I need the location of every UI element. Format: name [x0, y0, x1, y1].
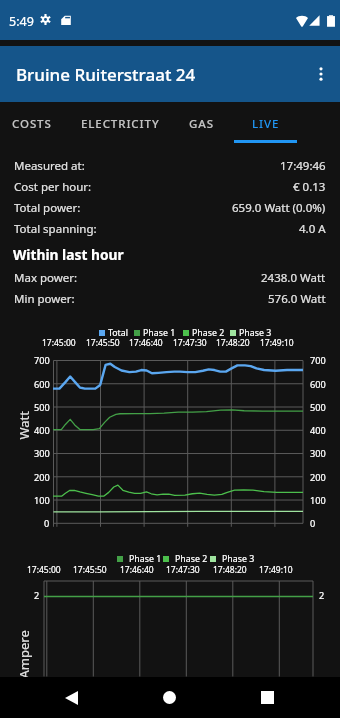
- staticText: 0: [44, 517, 50, 530]
- staticText: Measured at:: [14, 158, 85, 174]
- staticText: Phase 3: [222, 553, 255, 565]
- staticText: 17:48:20: [213, 564, 247, 576]
- button[interactable]: Recent apps: [247, 677, 288, 718]
- staticText: 17:46:40: [120, 564, 154, 576]
- staticText: Total spanning:: [14, 221, 97, 237]
- staticText: Phase 2: [192, 327, 225, 339]
- staticText: Total power:: [14, 200, 81, 216]
- staticText: 300: [34, 447, 50, 460]
- staticText: 100: [310, 494, 326, 507]
- staticText: 600: [310, 378, 326, 391]
- button[interactable]: ELECTRICITY: [64, 101, 176, 146]
- staticText: 500: [310, 401, 326, 414]
- staticText: 17:45:00: [27, 564, 61, 576]
- button[interactable]: Back: [51, 677, 92, 718]
- button[interactable]: Home: [149, 677, 190, 718]
- button[interactable]: GAS: [176, 101, 227, 146]
- staticText: 17:49:10: [260, 337, 294, 349]
- staticText: 0: [310, 517, 316, 530]
- staticText: 200: [34, 471, 50, 484]
- staticText: 600: [34, 378, 50, 391]
- staticText: Phase 1: [129, 553, 162, 565]
- staticText: Within last hour: [13, 245, 124, 264]
- staticText: 17:45:00: [42, 337, 76, 349]
- staticText: € 0.13: [293, 179, 326, 195]
- staticText: 700: [34, 354, 50, 367]
- staticText: 4.0 A: [299, 221, 326, 237]
- staticText: Max power:: [14, 270, 78, 286]
- staticText: Phase 3: [239, 327, 272, 339]
- staticText: 2: [319, 589, 325, 602]
- staticText: 300: [310, 447, 326, 460]
- staticText: 17:49:10: [259, 564, 293, 576]
- staticText: Total: [108, 327, 128, 339]
- staticText: 400: [310, 424, 326, 437]
- staticText: 5:49: [9, 13, 34, 30]
- staticText: COSTS: [12, 116, 52, 132]
- staticText: 700: [310, 354, 326, 367]
- staticText: 17:47:30: [166, 564, 200, 576]
- staticText: 2: [34, 589, 40, 602]
- staticText: Watt: [14, 410, 32, 439]
- button[interactable]: More options: [297, 50, 340, 98]
- button[interactable]: LIVE: [234, 101, 297, 146]
- staticText: 17:49:46: [280, 158, 326, 174]
- staticText: 500: [34, 401, 50, 414]
- staticText: 17:47:30: [173, 337, 207, 349]
- staticText: 200: [310, 471, 326, 484]
- staticText: 659.0 Watt (0.0%): [232, 200, 326, 216]
- staticText: ELECTRICITY: [81, 116, 160, 132]
- staticText: Phase 1: [143, 327, 176, 339]
- staticText: 100: [34, 494, 50, 507]
- staticText: 576.0 Watt: [268, 291, 326, 307]
- staticText: Ampere: [14, 629, 32, 678]
- staticText: Cost per hour:: [14, 179, 92, 195]
- staticText: LIVE: [252, 116, 280, 132]
- staticText: Bruine Ruiterstraat 24: [16, 63, 196, 86]
- staticText: Min power:: [14, 291, 75, 307]
- staticText: 17:46:40: [129, 337, 163, 349]
- staticText: 17:45:50: [86, 337, 120, 349]
- staticText: 2438.0 Watt: [261, 270, 326, 286]
- staticText: 17:48:20: [216, 337, 250, 349]
- staticText: Phase 2: [175, 553, 208, 565]
- staticText: 400: [34, 424, 50, 437]
- staticText: 17:45:50: [73, 564, 107, 576]
- button[interactable]: COSTS: [0, 101, 64, 146]
- staticText: GAS: [189, 116, 214, 132]
